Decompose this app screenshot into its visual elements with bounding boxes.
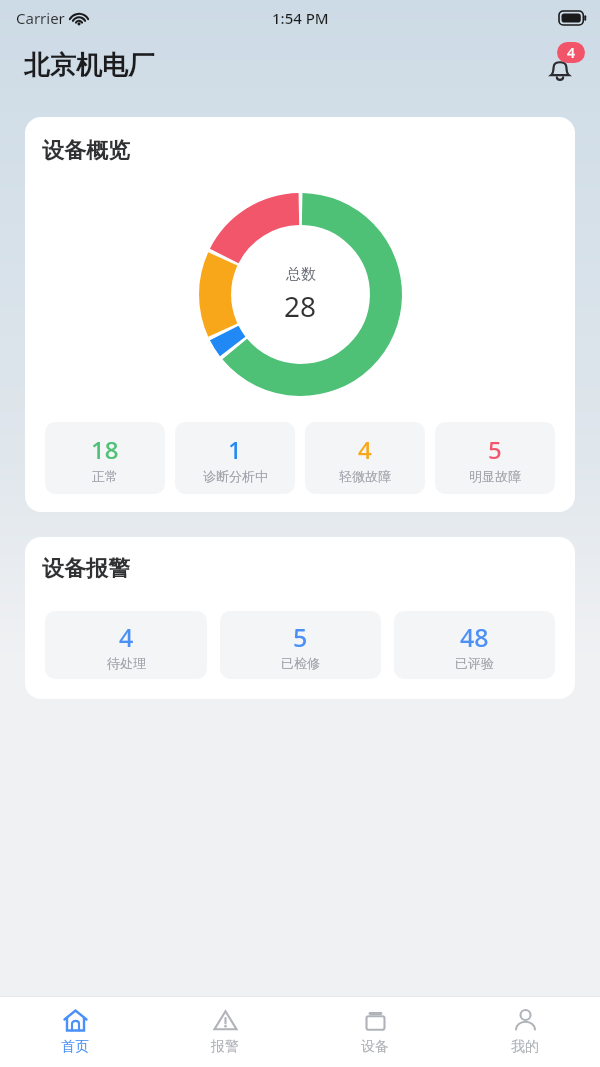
button[interactable]: 4 — [305, 422, 425, 494]
staticText: 4 — [119, 620, 134, 654]
staticText: 设备报警 — [42, 555, 130, 583]
button[interactable]: 18 — [45, 422, 165, 494]
staticText: 北京机电厂 — [24, 49, 154, 82]
staticText: 首页 — [61, 1038, 89, 1056]
button[interactable]: 5 — [220, 611, 381, 679]
button[interactable]: 5 — [435, 422, 555, 494]
staticText: 总数 — [286, 265, 316, 284]
staticText: 48 — [460, 620, 489, 654]
button[interactable]: Notifications, 4 unread — [534, 40, 586, 92]
staticText: 1 — [228, 433, 242, 466]
staticText: 轻微故障 — [339, 468, 391, 484]
button[interactable]: 首页 — [0, 997, 150, 1067]
staticText: 1:54 PM — [272, 8, 329, 28]
staticText: 报警 — [211, 1038, 239, 1056]
staticText: 5 — [293, 620, 308, 654]
staticText: 正常 — [92, 468, 118, 484]
staticText: 设备 — [361, 1038, 389, 1056]
button[interactable]: 我的 — [450, 997, 600, 1067]
staticText: 已检修 — [281, 655, 320, 671]
staticText: 4 — [567, 43, 576, 62]
staticText: 待处理 — [107, 655, 146, 671]
button[interactable]: 4 — [45, 611, 207, 679]
staticText: 明显故障 — [469, 468, 521, 484]
staticText: 设备概览 — [42, 137, 130, 165]
staticText: 诊断分析中 — [203, 468, 268, 484]
staticText: 我的 — [511, 1038, 539, 1056]
staticText: 已评验 — [455, 655, 494, 671]
staticText: Carrier — [16, 8, 65, 28]
staticText: 18 — [91, 433, 119, 466]
button[interactable]: 设备 — [300, 997, 450, 1067]
button[interactable]: 48 — [394, 611, 555, 679]
staticText: 28 — [284, 287, 317, 325]
button[interactable]: 报警 — [150, 997, 300, 1067]
button[interactable]: 1 — [175, 422, 295, 494]
staticText: 5 — [488, 433, 502, 466]
staticText: 4 — [358, 433, 372, 466]
